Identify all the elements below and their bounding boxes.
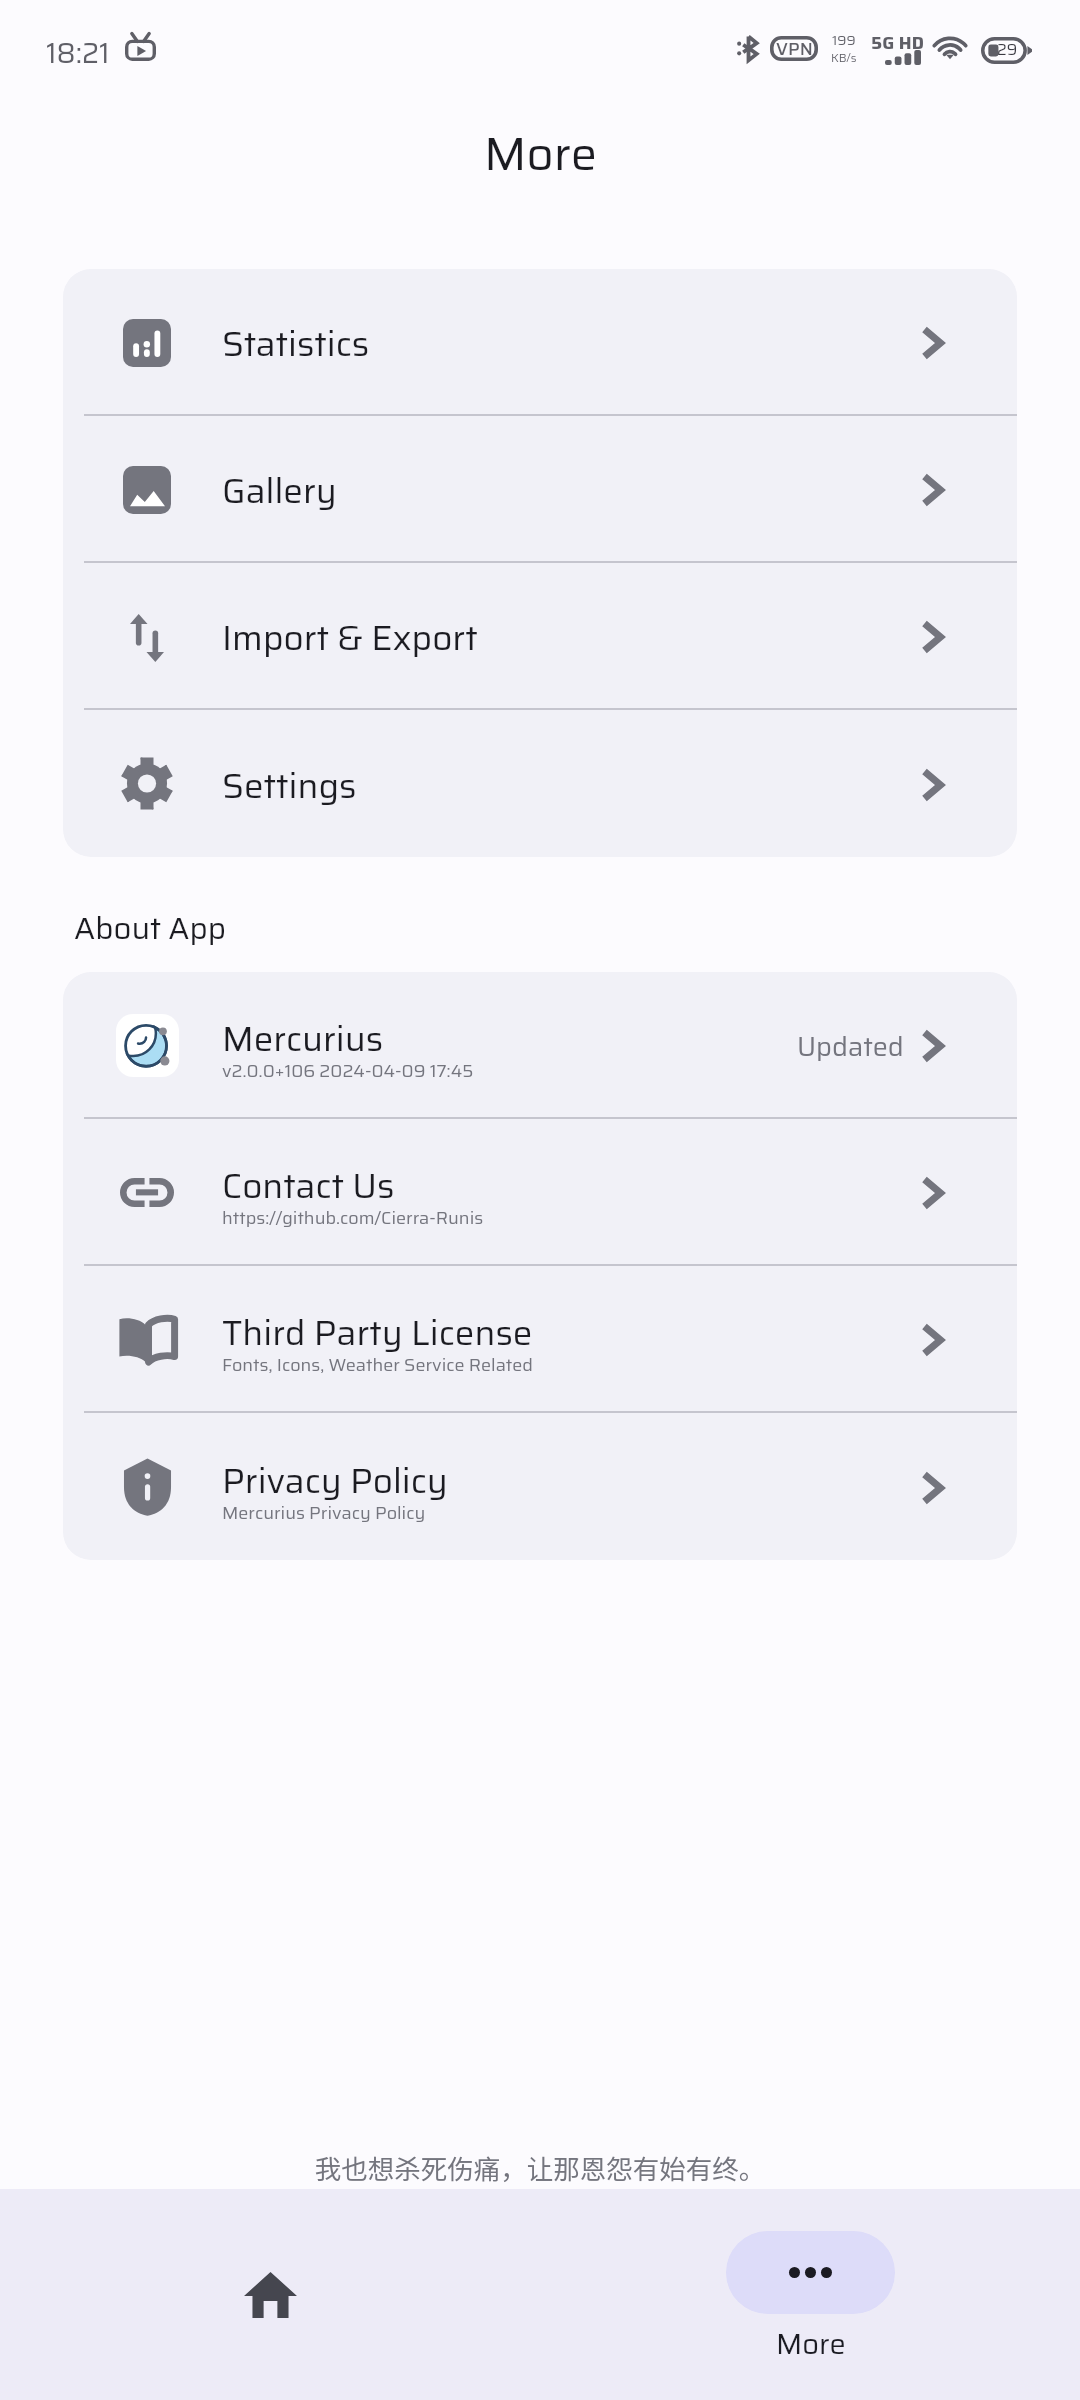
- staticText: https://github.com/Cierra-Runis: [222, 1204, 484, 1232]
- staticText: Mercurius Privacy Policy: [222, 1499, 426, 1527]
- button[interactable]: Statistics: [63, 269, 1017, 416]
- button[interactable]: Gallery: [63, 416, 1017, 563]
- staticText: Mercurius: [222, 1011, 384, 1066]
- staticText: More: [484, 117, 597, 191]
- button[interactable]: Contact Us: [63, 1119, 1017, 1266]
- button[interactable]: Settings: [63, 710, 1017, 857]
- staticText: Statistics: [222, 316, 370, 371]
- button[interactable]: Privacy Policy: [63, 1413, 1017, 1560]
- staticText: Settings: [222, 758, 357, 813]
- staticText: Privacy Policy: [222, 1453, 448, 1508]
- staticText: Updated: [797, 1025, 904, 1067]
- staticText: Third Party License: [222, 1305, 533, 1360]
- staticText: More: [776, 2321, 846, 2367]
- button[interactable]: More: [726, 2189, 895, 2387]
- staticText: 29: [997, 37, 1018, 62]
- button[interactable]: Third Party License: [63, 1266, 1017, 1413]
- staticText: Import & Export: [222, 610, 478, 665]
- button[interactable]: Mercurius: [63, 972, 1017, 1119]
- staticText: 5G HD: [871, 29, 924, 57]
- staticText: KB/s: [831, 49, 857, 67]
- staticText: Fonts, Icons, Weather Service Related: [222, 1351, 533, 1379]
- staticText: Contact Us: [222, 1158, 395, 1213]
- staticText: 199: [832, 29, 856, 51]
- staticText: 18:21: [46, 31, 110, 75]
- staticText: Gallery: [222, 463, 337, 518]
- button[interactable]: Import & Export: [63, 563, 1017, 710]
- staticText: About App: [74, 904, 227, 953]
- button[interactable]: Home: [189, 2189, 352, 2348]
- staticText: v2.0.0+106 2024-04-09 17:45: [222, 1057, 474, 1085]
- staticText: VPN: [776, 35, 813, 60]
- staticText: 我也想杀死伤痛，让那恩怨有始有终。: [0, 2148, 1080, 2186]
